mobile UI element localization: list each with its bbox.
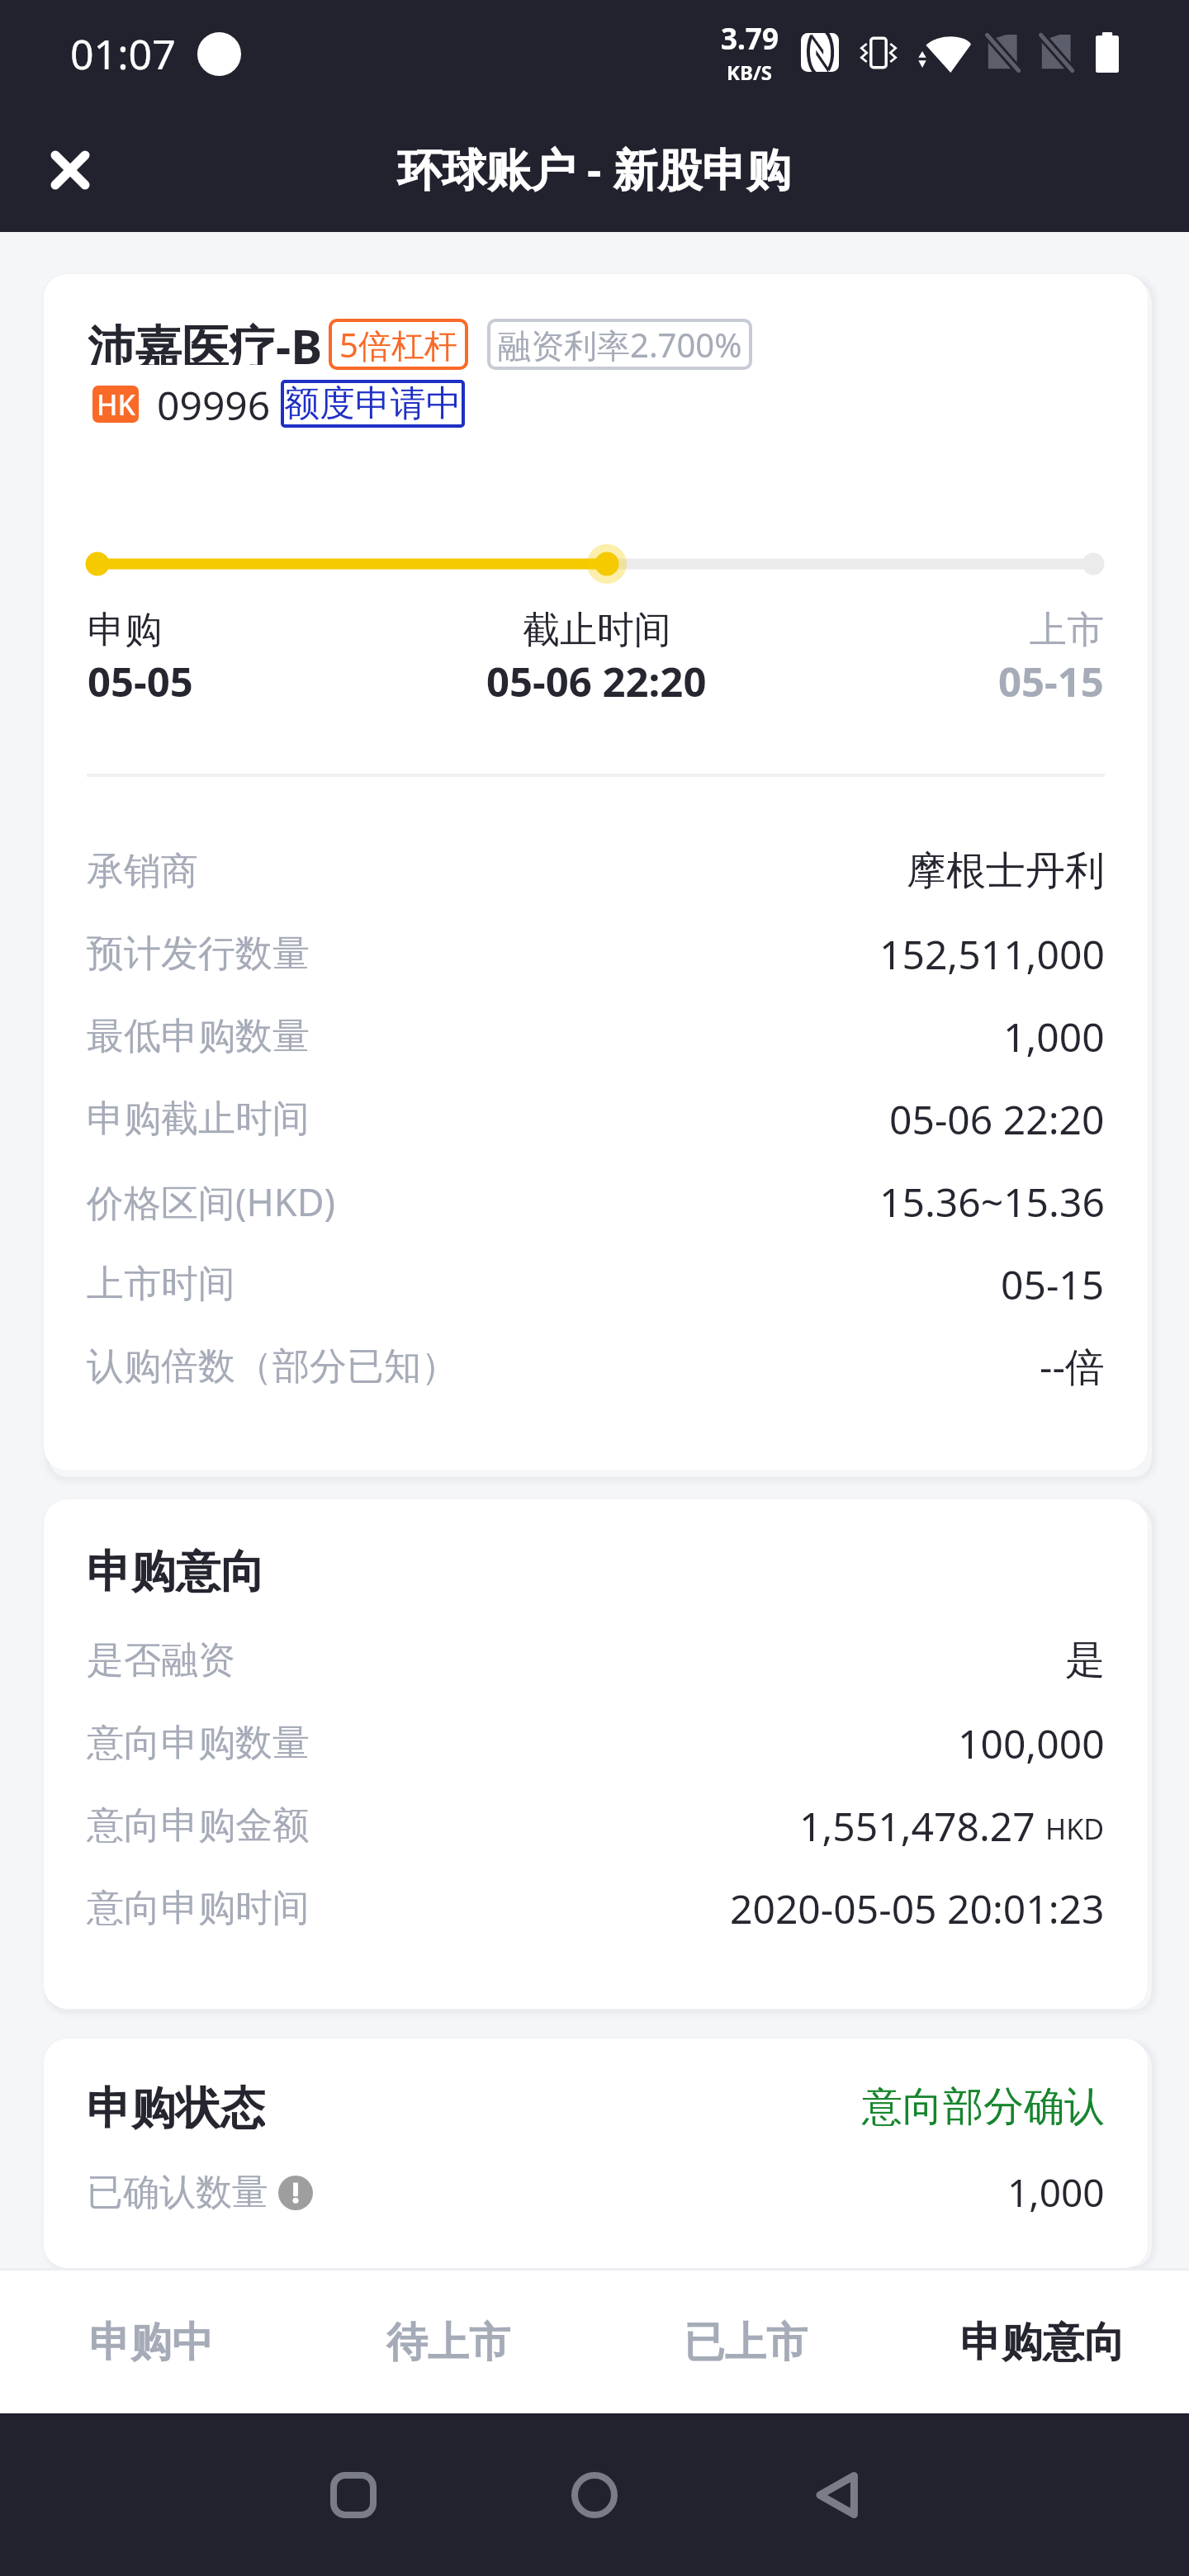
- staticText: 申购截止时间: [87, 1096, 310, 1143]
- staticText: 100,000: [958, 1717, 1105, 1770]
- staticText: HKD: [1045, 1810, 1105, 1848]
- staticText: 05-15: [998, 654, 1104, 709]
- staticText: 5倍杠杆: [339, 322, 457, 367]
- button[interactable]: 申购意向: [892, 2268, 1189, 2413]
- staticText: 意向申购时间: [87, 1885, 310, 1932]
- staticText: 01:07: [70, 26, 176, 82]
- staticText: 是: [1065, 1636, 1105, 1685]
- button[interactable]: 待上市: [297, 2268, 594, 2413]
- staticText: 摩根士丹利: [907, 846, 1105, 896]
- staticText: 融资利率2.700%: [498, 322, 742, 367]
- staticText: 环球账户 - 新股申购: [397, 138, 792, 199]
- staticText: 额度申请中: [284, 381, 462, 426]
- staticText: 1,551,478.27: [799, 1799, 1035, 1853]
- staticText: 承销商: [87, 848, 198, 895]
- staticText: 上市: [1030, 607, 1104, 654]
- staticText: 沛嘉医疗-B: [88, 314, 323, 365]
- staticText: 意向申购数量: [87, 1720, 310, 1767]
- staticText: 是否融资: [87, 1637, 235, 1684]
- staticText: 1,000: [1003, 1010, 1105, 1063]
- staticText: 05-06 22:20: [486, 654, 707, 709]
- staticText: 1,000: [1007, 2166, 1105, 2218]
- button[interactable]: 申购中: [0, 2268, 297, 2413]
- button[interactable]: Recents: [233, 2413, 474, 2576]
- staticText: 3.79: [721, 19, 779, 59]
- staticText: 申购意向: [960, 2317, 1125, 2369]
- staticText: 意向申购金额: [87, 1802, 310, 1849]
- button[interactable]: 已上市: [594, 2268, 892, 2413]
- staticText: 意向部分确认: [862, 2081, 1105, 2133]
- button[interactable]: Home: [474, 2413, 715, 2576]
- staticText: 最低申购数量: [87, 1013, 310, 1060]
- staticText: 05-06 22:20: [889, 1092, 1105, 1146]
- staticText: 05-15: [1001, 1257, 1105, 1311]
- staticText: 待上市: [386, 2317, 510, 2369]
- staticText: 认购倍数（部分已知）: [87, 1343, 458, 1390]
- staticText: 申购意向: [87, 1544, 265, 1600]
- staticText: 申购: [88, 607, 162, 654]
- button[interactable]: Close: [26, 126, 114, 214]
- staticText: 申购状态: [87, 2081, 265, 2133]
- staticText: 价格区间(HKD): [87, 1177, 336, 1227]
- button[interactable]: Back: [715, 2413, 956, 2576]
- staticText: --倍: [1040, 1339, 1105, 1394]
- staticText: 申购中: [89, 2317, 213, 2369]
- staticText: 预计发行数量: [87, 930, 310, 978]
- staticText: 2020-05-05 20:01:23: [730, 1882, 1105, 1935]
- staticText: 05-05: [88, 654, 193, 709]
- staticText: 152,511,000: [879, 927, 1105, 981]
- staticText: 已确认数量: [87, 2170, 268, 2215]
- staticText: 15.36~15.36: [879, 1175, 1105, 1229]
- staticText: KB/S: [727, 59, 773, 86]
- staticText: 截止时间: [523, 607, 671, 654]
- staticText: 已上市: [684, 2317, 808, 2369]
- staticText: HK: [97, 386, 135, 423]
- staticText: 09996: [157, 378, 271, 429]
- staticText: 上市时间: [87, 1261, 235, 1308]
